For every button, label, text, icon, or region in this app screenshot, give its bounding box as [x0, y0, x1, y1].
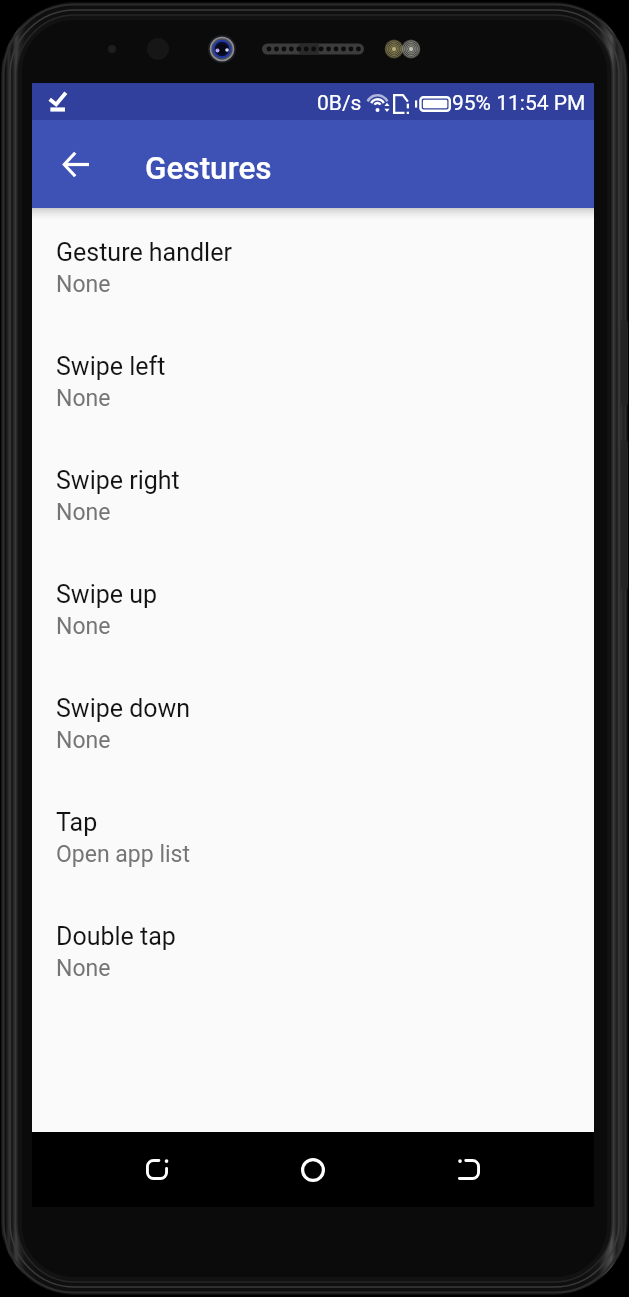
button[interactable]: Home [281, 1132, 345, 1207]
staticText: Gesture handler [56, 238, 232, 267]
staticText: None [56, 955, 111, 982]
staticText: None [56, 271, 111, 298]
button[interactable]: Tap [32, 798, 594, 912]
staticText: None [56, 499, 111, 526]
staticText: 95% 11:54 PM [452, 91, 586, 116]
button[interactable]: Recent apps [125, 1132, 189, 1207]
staticText: Double tap [56, 922, 176, 951]
staticText: None [56, 613, 111, 640]
button[interactable]: Swipe right [32, 456, 594, 570]
button[interactable]: Double tap [32, 912, 594, 1026]
staticText: None [56, 727, 111, 754]
staticText: 0B/s [317, 91, 362, 116]
staticText: Open app list [56, 841, 190, 868]
button[interactable]: Swipe left [32, 342, 594, 456]
button[interactable]: Back [437, 1132, 501, 1207]
staticText: Gestures [145, 150, 272, 187]
staticText: Swipe left [56, 352, 166, 381]
staticText: None [56, 385, 111, 412]
staticText: Swipe down [56, 694, 191, 723]
button[interactable]: Swipe down [32, 684, 594, 798]
button[interactable]: Back [40, 128, 112, 200]
staticText: Swipe up [56, 580, 158, 609]
button[interactable]: Gesture handler [32, 228, 594, 342]
staticText: Tap [56, 808, 98, 837]
button[interactable]: Swipe up [32, 570, 594, 684]
staticText: Swipe right [56, 466, 180, 495]
